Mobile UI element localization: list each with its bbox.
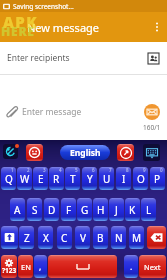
button[interactable]: Theme: [3, 144, 18, 159]
staticText: 9: [143, 167, 146, 173]
button[interactable]: E: [33, 167, 48, 190]
staticText: Next: [144, 262, 161, 272]
staticText: R: [53, 172, 60, 186]
button[interactable]: M: [129, 226, 144, 249]
button[interactable]: ,: [34, 255, 47, 278]
button[interactable]: G: [77, 198, 92, 221]
staticText: Enter message: [22, 106, 82, 118]
staticText: EN: [21, 262, 31, 272]
button[interactable]: B: [93, 226, 108, 249]
staticText: D: [48, 203, 56, 217]
button[interactable]: A: [10, 198, 25, 221]
button[interactable]: More options: [147, 12, 167, 42]
button[interactable]: L: [141, 198, 156, 221]
staticText: 7: [109, 167, 112, 173]
button[interactable]: X: [38, 226, 53, 249]
button[interactable]: H: [93, 198, 108, 221]
staticText: S: [32, 203, 38, 217]
button[interactable]: Enter recipients: [0, 42, 167, 74]
staticText: K: [129, 203, 136, 217]
button[interactable]: Voice input: [117, 144, 134, 161]
staticText: X: [43, 231, 49, 245]
button[interactable]: U: [99, 167, 114, 190]
staticText: ?123: [2, 266, 17, 275]
button[interactable]: F: [61, 198, 76, 221]
staticText: B: [97, 231, 104, 245]
button[interactable]: K: [125, 198, 140, 221]
staticText: Y: [87, 172, 93, 186]
staticText: U: [103, 172, 111, 186]
button[interactable]: Next: [139, 255, 166, 278]
staticText: New message: [27, 20, 100, 35]
staticText: 5: [75, 167, 78, 173]
staticText: J: [115, 203, 118, 217]
button[interactable]: S: [27, 198, 42, 221]
button[interactable]: Q: [1, 167, 16, 190]
staticText: O: [137, 172, 145, 186]
button[interactable]: Y: [82, 167, 97, 190]
staticText: 8: [126, 167, 129, 173]
other: Attach file: [6, 106, 18, 118]
button[interactable]: I: [116, 167, 131, 190]
staticText: G: [81, 203, 89, 217]
staticText: 3: [43, 167, 46, 173]
button[interactable]: Emoji: [26, 144, 43, 161]
staticText: F: [66, 203, 72, 217]
staticText: T: [70, 172, 76, 186]
staticText: Enter recipients: [7, 52, 70, 64]
staticText: Z: [24, 231, 30, 245]
staticText: 1: [11, 167, 14, 173]
staticText: .: [130, 261, 133, 273]
button[interactable]: Hide keyboard: [143, 144, 160, 161]
button[interactable]: Space: [48, 255, 117, 278]
staticText: Saving screenshot...: [13, 2, 74, 11]
staticText: 2: [27, 167, 30, 173]
staticText: 4: [59, 167, 62, 173]
staticText: ,: [39, 261, 42, 273]
button[interactable]: O: [133, 167, 148, 190]
button[interactable]: .: [124, 255, 138, 278]
button[interactable]: Shift: [1, 226, 18, 249]
button[interactable]: W: [17, 167, 32, 190]
staticText: C: [61, 231, 68, 245]
button[interactable]: Choose contact: [148, 53, 159, 64]
button[interactable]: N: [111, 226, 126, 249]
staticText: I: [122, 172, 126, 186]
staticText: 6: [92, 167, 95, 173]
button[interactable]: Z: [19, 226, 34, 249]
staticText: 0: [160, 167, 163, 173]
staticText: Q: [5, 172, 13, 186]
button[interactable]: V: [75, 226, 90, 249]
staticText: W: [20, 172, 30, 186]
button[interactable]: Symbols: [1, 255, 17, 278]
staticText: H: [97, 203, 105, 217]
staticText: V: [80, 231, 86, 245]
staticText: English: [70, 147, 101, 159]
button[interactable]: Attach file: [0, 100, 167, 124]
button[interactable]: D: [44, 198, 59, 221]
button[interactable]: Send message: [144, 104, 160, 120]
staticText: A: [14, 203, 21, 217]
staticText: N: [115, 231, 123, 245]
staticText: HERE: [1, 23, 35, 39]
staticText: E: [38, 172, 44, 186]
staticText: L: [146, 203, 152, 217]
button[interactable]: C: [57, 226, 72, 249]
staticText: P: [154, 172, 161, 186]
staticText: 160/1: [143, 123, 161, 132]
staticText: M: [132, 231, 142, 245]
staticText: APK: [3, 12, 38, 32]
button[interactable]: EN: [18, 255, 33, 278]
button[interactable]: Backspace: [147, 226, 166, 249]
button[interactable]: T: [65, 167, 80, 190]
button[interactable]: R: [49, 167, 64, 190]
button[interactable]: J: [109, 198, 124, 221]
button[interactable]: P: [150, 167, 165, 190]
button[interactable]: English: [60, 145, 110, 160]
